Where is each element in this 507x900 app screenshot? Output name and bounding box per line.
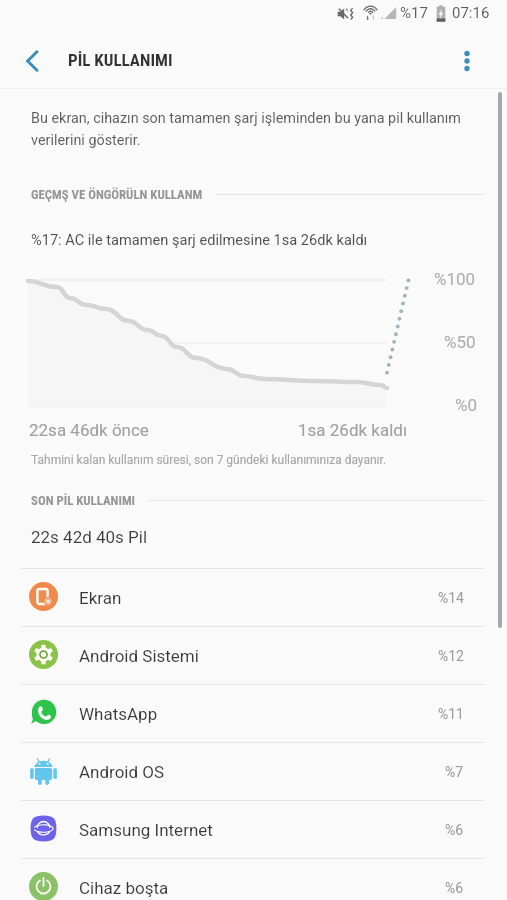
staticText: Samsung Internet [79, 820, 213, 840]
staticText: Cihaz boşta [79, 878, 169, 898]
staticText: Android OS [79, 762, 165, 782]
staticText: %0 [455, 395, 478, 415]
button[interactable]: Back [7, 36, 59, 88]
staticText: WhatsApp [79, 704, 158, 724]
staticText: %100 [434, 269, 476, 289]
button[interactable]: Samsung Internet [0, 801, 507, 858]
staticText: SON PİL KULLANIMI [31, 493, 136, 508]
staticText: Android Sistemi [79, 646, 199, 666]
staticText: 22s 42d 40s Pil [31, 527, 148, 547]
staticText: Bu ekran, cihazın son tamamen şarj işlem… [31, 110, 467, 149]
button[interactable]: WhatsApp [0, 685, 507, 742]
staticText: Tahmini kalan kullanım süresi, son 7 gün… [31, 453, 387, 467]
staticText: 1sa 26dk kaldı [298, 420, 408, 440]
staticText: %11 [438, 706, 464, 722]
staticText: %14 [438, 590, 464, 606]
button[interactable]: Ekran [0, 569, 507, 626]
staticText: GEÇMŞ VE ÖNGÖRÜLN KULLANM [31, 187, 203, 202]
staticText: %6 [445, 822, 464, 838]
staticText: %6 [445, 880, 464, 896]
button[interactable]: Android OS [0, 743, 507, 800]
staticText: %17 [400, 4, 428, 22]
staticText: Ekran [79, 588, 122, 608]
staticText: %7 [445, 764, 464, 780]
button[interactable]: Cihaz boşta [0, 859, 507, 900]
staticText: PİL KULLANIMI [68, 50, 173, 70]
staticText: %12 [438, 648, 464, 664]
staticText: 07:16 [452, 4, 490, 22]
staticText: 22sa 46dk önce [29, 420, 149, 440]
staticText: %17: AC ile tamamen şarj edilmesine 1sa … [31, 231, 368, 248]
staticText: %50 [444, 332, 476, 352]
button[interactable]: Android Sistemi [0, 627, 507, 684]
button[interactable]: More options [441, 36, 493, 88]
